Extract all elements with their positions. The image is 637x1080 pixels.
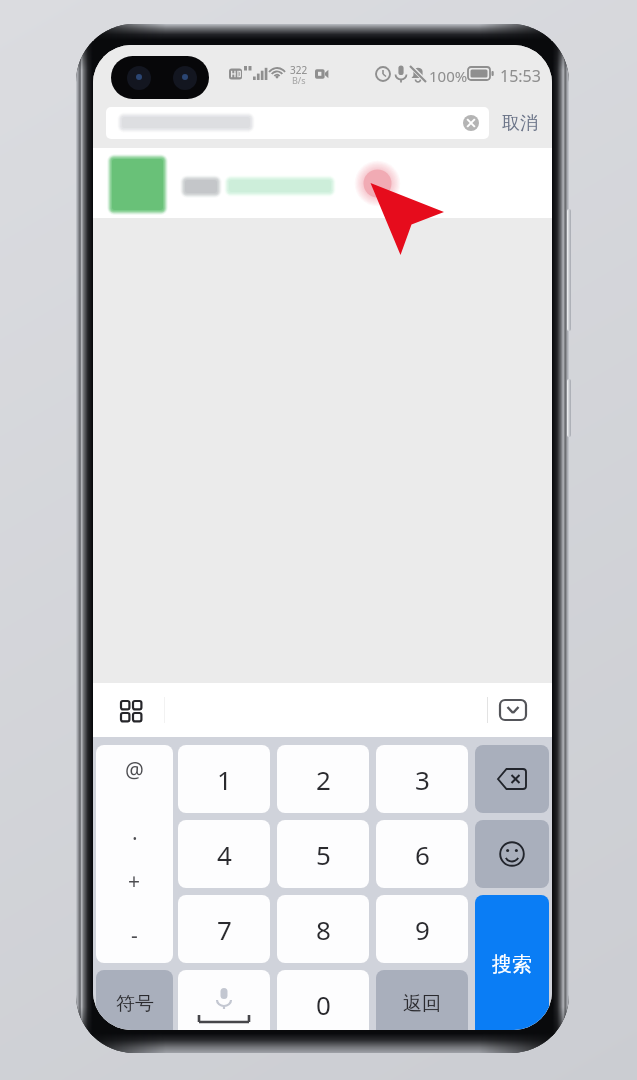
button[interactable] [93,148,552,218]
button[interactable]: Clear text [106,107,489,139]
staticText: @ [125,756,144,784]
button[interactable]: 7 [178,895,270,963]
staticText: 1 [217,762,232,797]
staticText: 返回 [403,992,441,1016]
button[interactable]: 0 [277,970,369,1030]
button[interactable]: 2 [277,745,369,813]
staticText: + [128,867,141,895]
button[interactable]: 6 [376,820,468,888]
button[interactable]: Clear text [461,113,481,133]
staticText: 2 [316,762,331,797]
button[interactable]: Space [178,970,270,1030]
staticText: 搜索 [492,952,532,977]
button[interactable]: Symbols [96,745,173,963]
button[interactable]: 取消 [495,106,545,140]
staticText: 取消 [502,112,538,135]
button[interactable]: 1 [178,745,270,813]
staticText: B/s [292,74,306,86]
button[interactable]: 4 [178,820,270,888]
staticText: 8 [316,912,331,947]
staticText: 9 [415,912,430,947]
staticText: 6 [415,837,430,872]
staticText: 7 [217,912,232,947]
button[interactable]: 返回 [376,970,468,1030]
staticText: 符号 [116,992,154,1016]
staticText: . [132,818,138,846]
button[interactable]: Hide keyboard [494,691,532,729]
button[interactable]: Backspace [475,745,549,813]
button[interactable]: Emoji [475,820,549,888]
staticText: 4 [217,837,232,872]
button[interactable]: 8 [277,895,369,963]
button[interactable]: 3 [376,745,468,813]
button[interactable]: 搜索 [475,895,549,1030]
staticText: - [131,921,138,949]
button[interactable]: 9 [376,895,468,963]
button[interactable]: 符号 [96,970,173,1030]
staticText: 0 [316,987,331,1022]
staticText: 100% [429,66,468,86]
staticText: 322 [290,63,308,77]
button[interactable]: 5 [277,820,369,888]
button[interactable]: Input methods [112,692,150,730]
staticText: 15:53 [500,65,541,87]
staticText: 3 [415,762,430,797]
staticText: 5 [316,837,331,872]
